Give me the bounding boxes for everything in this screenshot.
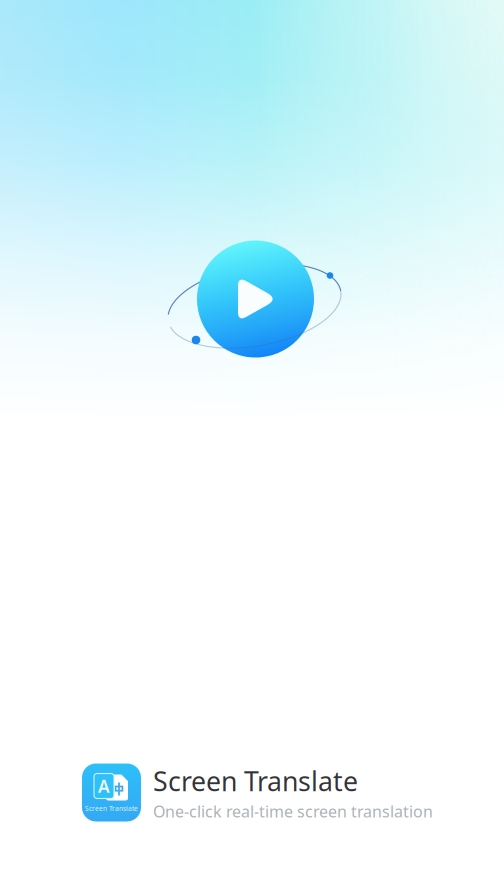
staticText: Screen Translate: [153, 763, 358, 799]
staticText: One-click real-time screen translation: [153, 801, 433, 822]
button[interactable]: A: [82, 761, 490, 823]
staticText: Screen Translate: [85, 804, 138, 813]
staticText: A: [98, 774, 110, 797]
